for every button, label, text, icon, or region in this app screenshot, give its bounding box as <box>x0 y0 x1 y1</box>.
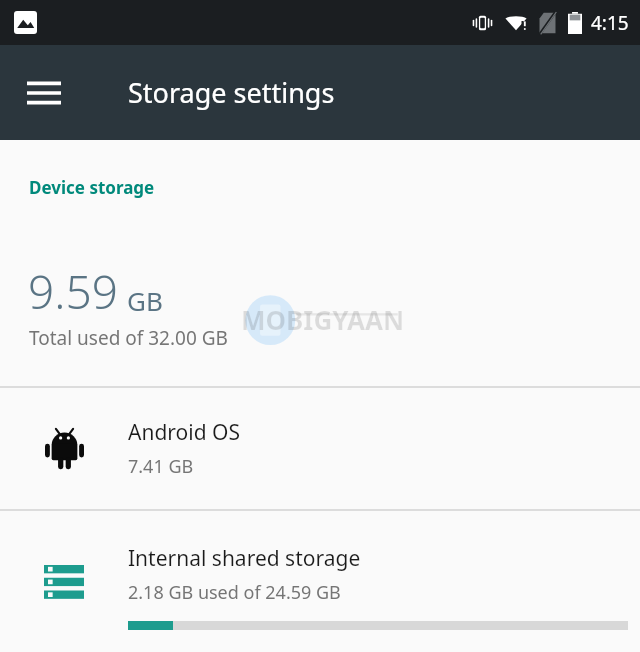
staticText: Storage settings <box>128 74 335 111</box>
staticText: Device storage <box>29 176 155 199</box>
staticText: Android OS <box>128 418 240 447</box>
staticText: Total used of 32.00 GB <box>29 325 228 351</box>
staticText: 4:15 <box>591 10 629 36</box>
staticText: Internal shared storage <box>128 544 361 573</box>
button[interactable]: Internal shared storage <box>0 511 640 652</box>
staticText: GB <box>127 283 163 318</box>
button[interactable]: Open navigation menu <box>18 67 70 119</box>
staticText: MOBIGYAAN <box>241 302 405 337</box>
button[interactable]: Android OS <box>0 388 640 509</box>
staticText: 7.41 GB <box>128 454 194 479</box>
staticText: 2.18 GB used of 24.59 GB <box>128 580 341 605</box>
staticText: 9.59 <box>28 260 119 323</box>
